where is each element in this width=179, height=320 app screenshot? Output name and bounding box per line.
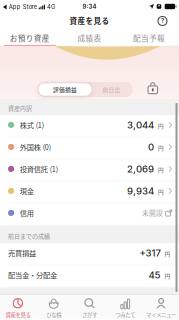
staticText: 配当金・分配金 [8, 270, 57, 280]
staticText: 0 [148, 141, 154, 153]
staticText: 45 [148, 269, 160, 281]
button[interactable]: 成績表 [60, 30, 119, 45]
staticText: ひな株 [46, 311, 61, 319]
staticText: 前日までの成績 [8, 232, 50, 240]
staticText: 現金 [20, 186, 34, 196]
staticText: 配当予報 [133, 32, 165, 43]
button[interactable]: 資産を見る [0, 294, 36, 320]
button[interactable]: つみたて [107, 294, 143, 320]
staticText: App Store [9, 3, 37, 10]
staticText: 投資信託 (1) [20, 164, 58, 174]
button[interactable]: 現金 [0, 181, 179, 203]
button[interactable]: 売買損益 [0, 243, 179, 265]
staticText: 円 [158, 166, 164, 174]
staticText: 2,069 [127, 163, 154, 175]
staticText: 円 [158, 144, 164, 152]
staticText: ? [161, 17, 164, 24]
staticText: マイメニュー [146, 311, 176, 319]
button[interactable]: マイメニュー [143, 294, 179, 320]
button[interactable]: 評価損益 [37, 82, 133, 97]
button[interactable]: お預り資産 [0, 30, 60, 45]
staticText: +317 [139, 247, 160, 259]
button[interactable]: 配当金・分配金 [0, 265, 179, 287]
staticText: 3,044 [127, 119, 154, 131]
button[interactable]: 表示ロック [147, 81, 159, 94]
staticText: お預り資産 [10, 32, 50, 43]
button[interactable]: 株式 (1) [0, 115, 179, 137]
button[interactable]: ひな株 [36, 294, 72, 320]
staticText: 9:34 [82, 3, 96, 10]
staticText: 円 [158, 188, 164, 196]
staticText: 資産を見る [69, 15, 109, 26]
staticText: 円 [158, 122, 164, 130]
button[interactable]: 外国株 (0) [0, 137, 179, 159]
staticText: さがす [82, 311, 97, 319]
staticText: 4G [47, 3, 55, 10]
staticText: 未開設 [142, 208, 163, 218]
staticText: 資産内訳 [8, 104, 32, 112]
staticText: つみたて [115, 311, 135, 319]
staticText: 資産を見る [5, 311, 30, 319]
staticText: 9,934 [127, 185, 154, 197]
staticText: 評価損益 [53, 85, 77, 94]
staticText: 信用 [20, 208, 34, 218]
button[interactable]: ヘルプ [156, 15, 168, 27]
staticText: 前日比 [102, 85, 120, 94]
staticText: 円 [164, 250, 170, 258]
staticText: 外国株 (0) [20, 142, 51, 152]
staticText: 成績表 [77, 32, 101, 43]
button[interactable]: 配当予報 [119, 30, 179, 45]
button[interactable]: さがす [72, 294, 107, 320]
button[interactable]: 信用 [0, 203, 179, 225]
staticText: 売買損益 [8, 248, 36, 258]
staticText: 円 [164, 272, 170, 280]
staticText: 株式 (1) [20, 120, 44, 130]
button[interactable]: 投資信託 (1) [0, 159, 179, 181]
